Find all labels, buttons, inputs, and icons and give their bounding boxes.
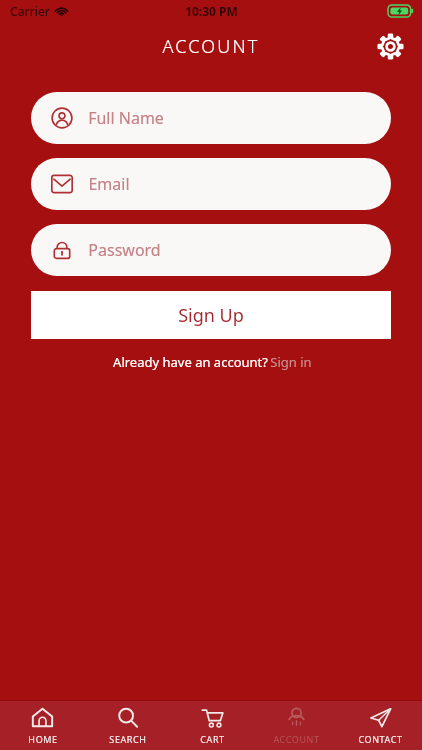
staticText: HOME [28, 733, 58, 745]
button[interactable]: CART [170, 701, 254, 750]
staticText: Email [88, 173, 130, 195]
button[interactable]: CONTACT [338, 701, 422, 750]
button[interactable]: Password [31, 224, 391, 276]
staticText: CONTACT [358, 733, 403, 745]
staticText: Already have an account? [111, 353, 270, 371]
staticText: Full Name [88, 107, 164, 129]
button[interactable]: Settings [370, 26, 410, 66]
button[interactable]: SEARCH [85, 701, 170, 750]
staticText: Sign in [270, 353, 312, 371]
staticText: ACCOUNT [162, 34, 260, 59]
staticText: CART [200, 733, 225, 745]
staticText: Sign Up [178, 303, 244, 328]
button[interactable]: ACCOUNT [254, 701, 338, 750]
button[interactable]: Sign Up [31, 291, 391, 339]
staticText: Carrier [10, 3, 50, 19]
button[interactable]: HOME [0, 701, 85, 750]
button[interactable]: Email [31, 158, 391, 210]
staticText: 10:30 PM [185, 3, 238, 19]
button[interactable]: Full Name [31, 92, 391, 144]
staticText: SEARCH [109, 733, 147, 745]
button[interactable]: Sign in [270, 353, 312, 371]
staticText: ACCOUNT [273, 733, 320, 745]
staticText: Password [88, 239, 161, 261]
